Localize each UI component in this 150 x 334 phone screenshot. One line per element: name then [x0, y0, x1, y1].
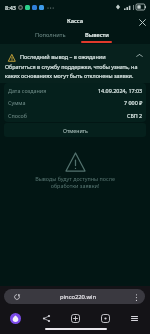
- staticText: 14.09.2024, 17:03: [98, 87, 143, 94]
- button[interactable]: Collapse: [132, 48, 146, 62]
- button[interactable]: New tab: [68, 311, 82, 325]
- staticText: Вывести: [85, 31, 109, 39]
- staticText: Дата создания: [8, 87, 47, 94]
- button[interactable]: Menu: [127, 311, 141, 325]
- staticText: Выводы будут доступны после обработки за…: [26, 175, 124, 190]
- staticText: Пополнить: [35, 31, 66, 39]
- button[interactable]: Close: [135, 15, 149, 29]
- button[interactable]: Share: [39, 311, 53, 325]
- staticText: pinco220.win: [60, 293, 97, 301]
- staticText: СБП 2: [127, 112, 143, 119]
- button[interactable]: Отменить: [4, 123, 146, 137]
- button[interactable]: Последний вывод – в ожидании: [0, 44, 150, 83]
- staticText: Касса: [67, 17, 84, 25]
- button[interactable]: Пополнить: [27, 29, 74, 44]
- button[interactable]: Tabs: [98, 311, 112, 325]
- staticText: Последний вывод – в ожидании: [20, 53, 106, 60]
- staticText: 8:43: [5, 4, 16, 11]
- button[interactable]: More options: [131, 290, 141, 304]
- button[interactable]: Reload: [4, 289, 145, 304]
- button[interactable]: Reload: [10, 289, 24, 304]
- button[interactable]: Browser home: [10, 313, 21, 324]
- staticText: Отменить: [63, 127, 88, 134]
- staticText: Сумма: [8, 99, 26, 106]
- staticText: Обратиться в службу поддержки, чтобы узн…: [5, 63, 145, 79]
- button[interactable]: Вывести: [73, 29, 120, 44]
- staticText: 7 000 ₽: [124, 99, 143, 106]
- staticText: Способ: [8, 112, 27, 119]
